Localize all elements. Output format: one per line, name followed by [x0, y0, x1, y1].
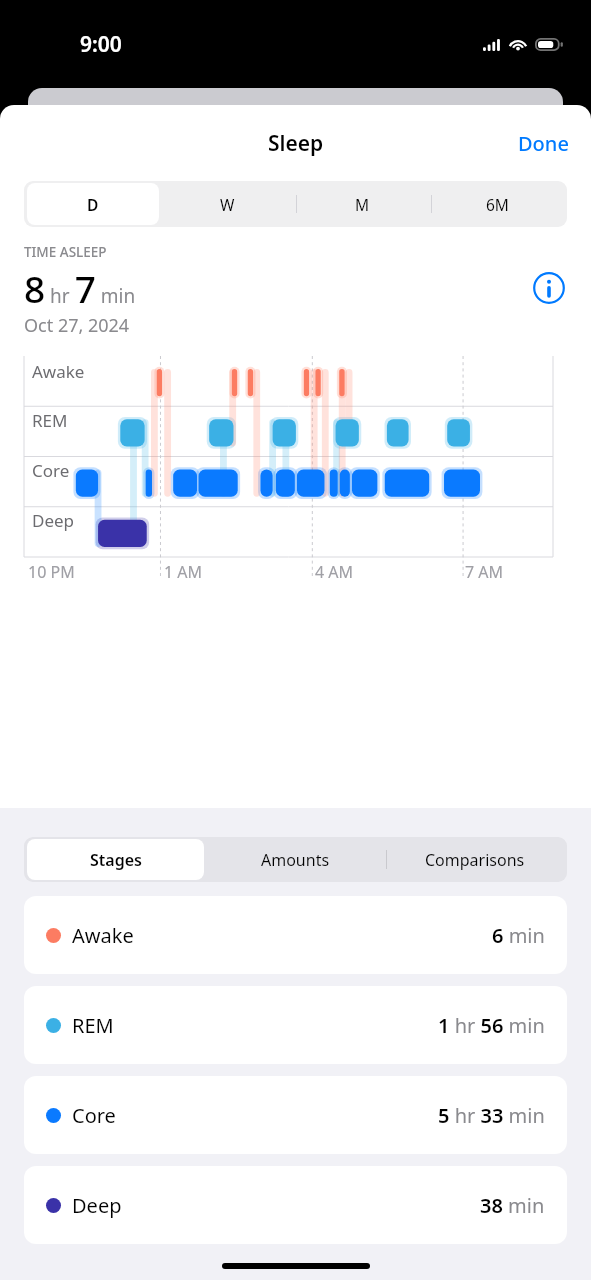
button[interactable]: REM — [24, 986, 567, 1064]
staticText: Comparisons — [425, 849, 525, 871]
button[interactable]: D — [27, 183, 159, 225]
staticText: Deep — [72, 1192, 122, 1219]
staticText: Sleep — [268, 129, 324, 158]
staticText: 6 min — [492, 922, 545, 949]
staticText: 1 AM — [164, 561, 203, 583]
staticText: TIME ASLEEP — [24, 243, 107, 261]
staticText: 9:00 — [80, 30, 122, 59]
staticText: W — [220, 194, 235, 215]
staticText: Core — [32, 459, 70, 482]
staticText: Amounts — [261, 849, 330, 871]
staticText: 38 min — [480, 1192, 545, 1219]
staticText: Core — [72, 1102, 116, 1129]
button[interactable]: W — [161, 183, 294, 225]
staticText: M — [355, 194, 370, 215]
staticText: 4 AM — [315, 561, 354, 583]
staticText: Awake — [32, 360, 85, 383]
staticText: 7 AM — [465, 561, 504, 583]
staticText: 8 hr 7 min — [24, 263, 136, 313]
staticText: 5 hr 33 min — [438, 1102, 545, 1129]
button[interactable]: Amounts — [206, 839, 384, 880]
staticText: Stages — [90, 849, 142, 871]
staticText: 1 hr 56 min — [438, 1012, 545, 1039]
staticText: Oct 27, 2024 — [24, 313, 130, 338]
button[interactable]: About sleep data — [531, 270, 567, 306]
button[interactable]: Awake — [24, 896, 567, 974]
staticText: Deep — [32, 509, 75, 532]
button[interactable]: Comparisons — [386, 839, 564, 880]
button[interactable]: Done — [496, 118, 591, 169]
staticText: REM — [72, 1012, 114, 1039]
button[interactable]: Core — [24, 1076, 567, 1154]
button[interactable]: M — [296, 183, 429, 225]
button[interactable]: 6M — [431, 183, 564, 225]
button[interactable]: Deep — [24, 1166, 567, 1244]
staticText: Done — [518, 130, 569, 157]
staticText: 10 PM — [28, 561, 75, 583]
staticText: 6M — [486, 194, 509, 215]
button[interactable]: Stages — [27, 839, 204, 880]
staticText: REM — [32, 409, 68, 432]
staticText: D — [87, 194, 99, 215]
staticText: Awake — [72, 922, 134, 949]
